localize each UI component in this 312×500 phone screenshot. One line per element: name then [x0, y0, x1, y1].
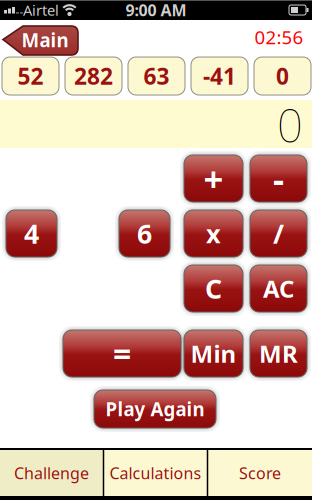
staticText: 9:00 AM [125, 0, 186, 21]
button[interactable]: 0 [254, 57, 311, 95]
staticText: + [203, 155, 223, 201]
staticText: 4 [24, 216, 39, 251]
button[interactable]: x [184, 210, 243, 257]
staticText: C [205, 271, 222, 306]
staticText: = [113, 332, 131, 375]
button[interactable]: 4 [6, 210, 57, 257]
button[interactable]: Challenge [0, 450, 103, 496]
button[interactable]: C [184, 265, 243, 312]
staticText: / [273, 216, 284, 251]
button[interactable]: 282 [65, 57, 122, 95]
staticText: Score [239, 462, 281, 484]
staticText: Airtel [23, 0, 59, 20]
button[interactable]: 6 [119, 210, 170, 257]
button[interactable]: MR [250, 330, 307, 377]
button[interactable]: Score [208, 450, 312, 496]
staticText: Main [21, 28, 68, 52]
staticText: Challenge [14, 462, 89, 484]
staticText: Min [190, 338, 236, 369]
button[interactable]: + [184, 155, 243, 202]
staticText: AC [263, 273, 294, 304]
staticText: - [273, 155, 284, 201]
button[interactable]: -41 [191, 57, 248, 95]
button[interactable]: 52 [2, 57, 59, 95]
staticText: x [206, 217, 221, 250]
staticText: 02:56 [254, 25, 303, 49]
button[interactable]: AC [250, 265, 307, 312]
staticText: 0 [277, 95, 303, 155]
staticText: Play Again [105, 397, 204, 421]
staticText: 6 [137, 216, 152, 251]
button[interactable]: Min [184, 330, 243, 377]
button[interactable]: 63 [128, 57, 185, 95]
staticText: MR [259, 338, 298, 369]
button[interactable]: = [63, 330, 181, 377]
button[interactable]: / [250, 210, 307, 257]
button[interactable]: - [250, 155, 307, 202]
staticText: -41 [203, 61, 236, 91]
staticText: 52 [17, 61, 43, 91]
button[interactable]: Calculations [103, 450, 207, 496]
button[interactable]: Main [1, 24, 79, 57]
staticText: 282 [74, 61, 113, 91]
staticText: 63 [143, 61, 169, 91]
button[interactable]: Play Again [94, 390, 216, 428]
staticText: Calculations [109, 462, 201, 484]
staticText: 0 [276, 61, 289, 91]
